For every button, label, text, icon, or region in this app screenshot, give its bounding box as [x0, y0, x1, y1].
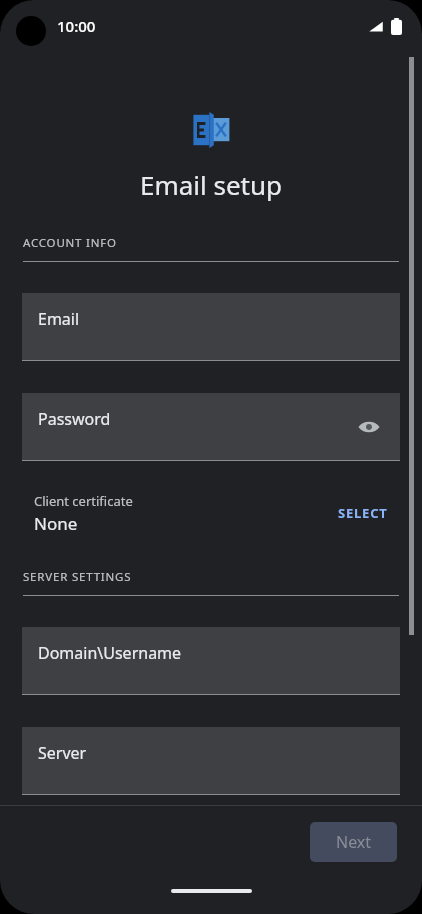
- button[interactable]: Password: [22, 393, 400, 461]
- button[interactable]: Show password: [352, 410, 386, 444]
- staticText: Client certificate: [34, 492, 133, 510]
- staticText: Domain\Username: [38, 642, 182, 664]
- button[interactable]: Server: [22, 727, 400, 795]
- staticText: Next: [336, 831, 372, 853]
- button[interactable]: Next: [310, 822, 397, 862]
- staticText: 10:00: [57, 16, 96, 36]
- staticText: SELECT: [338, 504, 388, 522]
- staticText: Server: [38, 742, 87, 764]
- staticText: None: [34, 512, 78, 535]
- button[interactable]: SELECT: [332, 496, 394, 530]
- staticText: Email setup: [0, 167, 422, 202]
- staticText: Password: [38, 408, 111, 430]
- button[interactable]: Email: [22, 293, 400, 361]
- button[interactable]: Domain\Username: [22, 627, 400, 695]
- staticText: ACCOUNT INFO: [23, 235, 117, 251]
- staticText: Email: [38, 308, 80, 330]
- staticText: SERVER SETTINGS: [23, 569, 132, 585]
